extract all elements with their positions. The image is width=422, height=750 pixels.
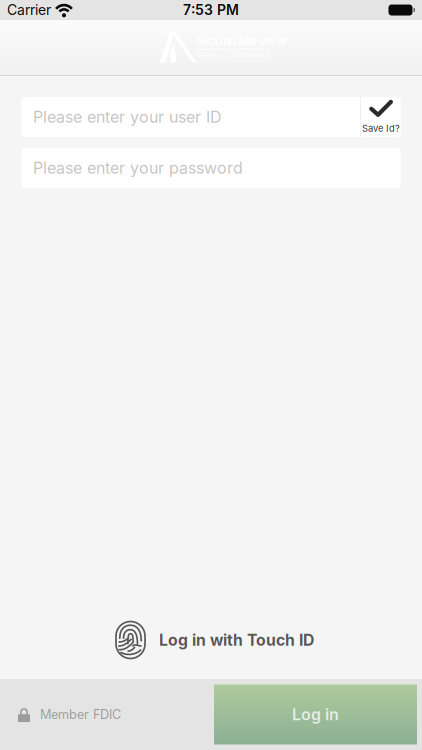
staticText: Log in xyxy=(292,705,339,724)
staticText: Please enter your user ID xyxy=(33,107,222,127)
staticText: Save Id? xyxy=(362,123,400,134)
staticText: Member FDIC xyxy=(40,707,121,722)
staticText: Log in with Touch ID xyxy=(159,630,314,649)
button[interactable]: Log in xyxy=(214,684,417,744)
button[interactable]: Log in with Touch ID xyxy=(0,601,422,679)
button[interactable]: Save Id xyxy=(361,97,401,137)
staticText: Please enter your password xyxy=(33,158,243,178)
staticText: 7:53 PM xyxy=(183,1,239,18)
staticText: Carrier xyxy=(7,1,51,18)
